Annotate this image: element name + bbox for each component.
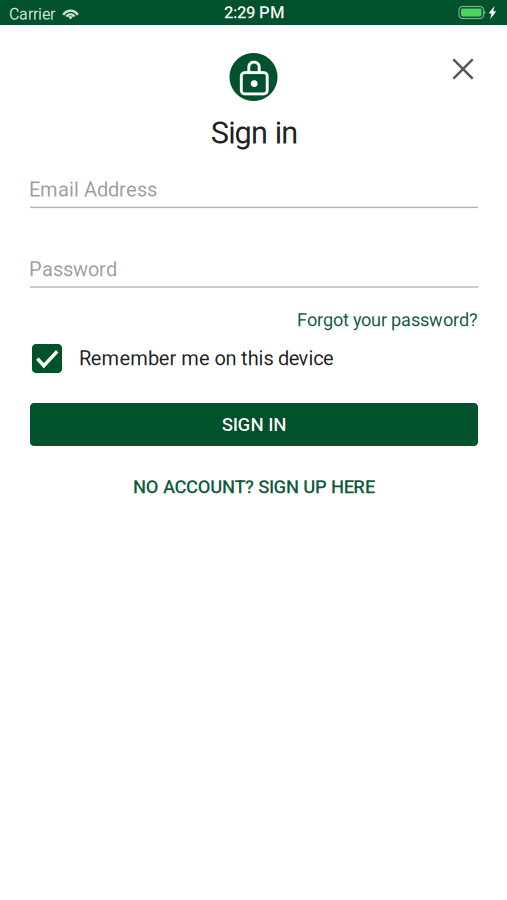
button[interactable]: Forgot your password? <box>30 308 478 332</box>
staticText: SIGN IN <box>222 414 286 435</box>
staticText: Carrier <box>9 5 55 24</box>
staticText: Email Address <box>29 178 157 201</box>
button[interactable]: SIGN IN <box>30 403 478 446</box>
staticText: Password <box>29 258 117 281</box>
button[interactable]: Email Address <box>30 173 478 208</box>
button[interactable]: Close <box>441 47 485 91</box>
staticText: Forgot your password? <box>297 309 478 331</box>
button[interactable]: NO ACCOUNT? SIGN UP HERE <box>30 475 478 499</box>
staticText: 2:29 PM <box>224 3 285 22</box>
staticText: NO ACCOUNT? SIGN UP HERE <box>133 476 375 498</box>
staticText: Remember me on this device <box>79 347 334 370</box>
button[interactable]: Password <box>30 253 478 288</box>
button[interactable]: Remember me on this device <box>32 344 352 373</box>
staticText: Sign in <box>211 115 298 151</box>
